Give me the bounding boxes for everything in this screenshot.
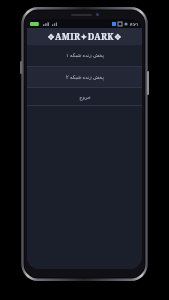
staticText: ❖AMIR✦DARK❖ [47, 31, 122, 43]
staticText: پخش زنده شبکه ۱ [66, 52, 104, 59]
staticText: ۴:۲۱ [130, 21, 139, 27]
button[interactable]: خروج [27, 88, 142, 105]
staticText: پخش زنده شبکه ۲ [66, 74, 104, 81]
staticText: خروج [79, 94, 91, 100]
other: Power button [147, 71, 149, 95]
button[interactable]: پخش زنده شبکه ۱ [27, 45, 142, 66]
button[interactable]: پخش زنده شبکه ۲ [27, 67, 142, 87]
